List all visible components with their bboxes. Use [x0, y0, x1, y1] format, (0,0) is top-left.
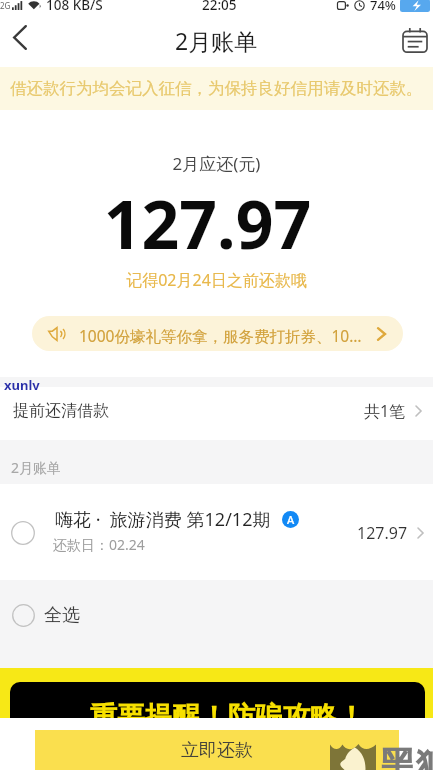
button[interactable]: 立即还款: [35, 730, 399, 770]
staticText: 立即还款: [181, 739, 253, 762]
staticText: 74%: [370, 0, 396, 14]
staticText: 127.97: [0, 178, 424, 268]
staticText: xunlv: [4, 376, 40, 394]
staticText: A: [287, 512, 295, 527]
staticText: 127.97: [357, 522, 408, 544]
staticText: 重要提醒！防骗攻略！: [90, 700, 365, 718]
staticText: 1000份壕礼等你拿，服务费打折券、10…: [79, 325, 362, 346]
staticText: 108 KB/S: [46, 0, 103, 14]
staticText: 还款日：02.24: [53, 535, 145, 554]
button[interactable]: 提前还清借款: [0, 387, 433, 440]
staticText: 共1笔: [364, 400, 406, 422]
staticText: 借还款行为均会记入征信，为保持良好信用请及时还款。: [10, 78, 423, 99]
button[interactable]: 重要提醒！防骗攻略！: [10, 682, 425, 718]
staticText: 嗨花 · 旅游消费 第12/12期: [55, 507, 271, 532]
staticText: 记得02月24日之前还款哦: [0, 269, 433, 291]
staticText: 2G: [0, 0, 11, 11]
staticText: 2月账单: [11, 458, 62, 477]
staticText: 2月应还(元): [0, 152, 433, 175]
staticText: 2月账单: [175, 25, 258, 56]
staticText: 黑狮: [378, 742, 433, 770]
button[interactable]: Bill calendar: [395, 20, 433, 60]
button[interactable]: 1000份壕礼等你拿，服务费打折券、10…: [32, 316, 403, 351]
button[interactable]: 嗨花 · 旅游消费 第12/12期: [0, 484, 433, 580]
staticText: 提前还清借款: [13, 401, 109, 421]
staticText: 22:05: [202, 0, 237, 14]
staticText: 全选: [44, 604, 80, 627]
button[interactable]: Back: [0, 17, 40, 57]
button[interactable]: 全选: [0, 589, 433, 641]
